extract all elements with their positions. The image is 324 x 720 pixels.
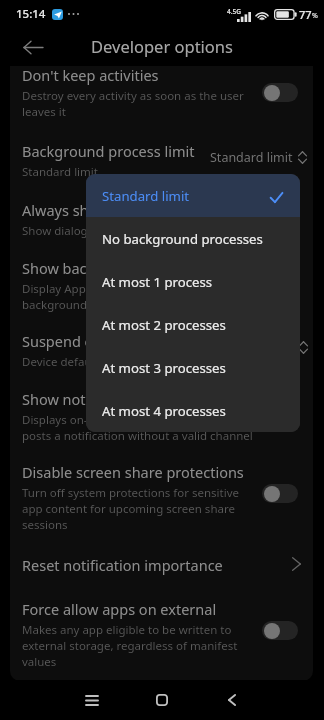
staticText: Always show crash dialog [22,200,195,220]
button[interactable]: Standard limit [86,174,300,217]
staticText: Standard limit [210,149,293,166]
button[interactable]: Toggle [262,83,298,102]
staticText: Standard limit [102,187,190,205]
staticText: Show background ANRs [22,258,185,278]
staticText: Reset notification importance [22,555,223,575]
button[interactable]: No background processes [86,217,300,260]
staticText: Device default [22,354,99,370]
staticText: Background process limit [22,141,195,161]
staticText: Don't keep activities [22,65,159,85]
staticText: Standard limit [22,164,98,180]
staticText: At most 3 processes [102,359,226,377]
staticText: Display App Not Responding dialog for [22,281,232,297]
staticText: Destroy every activity as soon as the us… [22,88,244,104]
button[interactable]: Reset notification importance [10,544,313,584]
staticText: % [312,11,318,21]
button[interactable]: Background process limit [10,130,313,185]
button[interactable]: At most 1 process [86,260,300,303]
staticText: Turn off system protections for sensitiv… [22,485,239,501]
staticText: background apps [22,297,117,313]
staticText: Makes any app eligible to be written to [22,622,232,638]
staticText: At most 1 process [102,273,213,291]
button[interactable]: Show notification channel warnings [10,378,313,448]
staticText: 77 [299,7,312,22]
staticText: values [22,654,57,670]
staticText: Show dialog box when app crashes [22,223,211,239]
staticText: external storage, regardless of manifest [22,638,238,654]
staticText: sessions [22,517,68,533]
staticText: posts a notification without a valid cha… [22,428,253,444]
staticText: Disable screen share protections [22,462,244,482]
staticText: Developer options [91,35,233,57]
staticText: app content for upcoming screen share [22,501,235,517]
staticText: At most 2 processes [102,316,226,334]
button[interactable]: Suspend execution for cached apps [10,320,313,375]
button[interactable]: At most 2 processes [86,303,300,346]
staticText: At most 4 processes [102,402,226,420]
button[interactable]: Toggle [262,621,298,640]
staticText: Displays on-screen warning when an app [22,412,244,428]
button[interactable]: Toggle [262,484,298,503]
staticText: Force allow apps on external [22,599,217,619]
button[interactable]: Back [212,680,252,720]
staticText: leaves it [22,104,66,120]
staticText: 15:14 [16,6,46,22]
button[interactable]: Home [142,680,182,720]
button[interactable]: Show background ANRs [10,247,313,317]
staticText: Suspend execution for cached apps [22,331,262,351]
button[interactable]: Toggle [262,207,298,226]
button[interactable]: Disable screen share protections [10,451,313,536]
button[interactable]: Back [18,32,48,62]
button[interactable]: At most 3 processes [86,346,300,389]
staticText: 4.5G [227,7,241,16]
button[interactable]: Force allow apps on external [10,588,313,673]
staticText: No background processes [102,230,263,248]
button[interactable]: Recent apps [72,680,112,720]
button[interactable]: At most 4 processes [86,389,300,432]
button[interactable]: Always show crash dialog [10,189,313,244]
button[interactable]: Don't keep activities [10,60,313,124]
staticText: Show notification channel warnings [22,389,265,409]
